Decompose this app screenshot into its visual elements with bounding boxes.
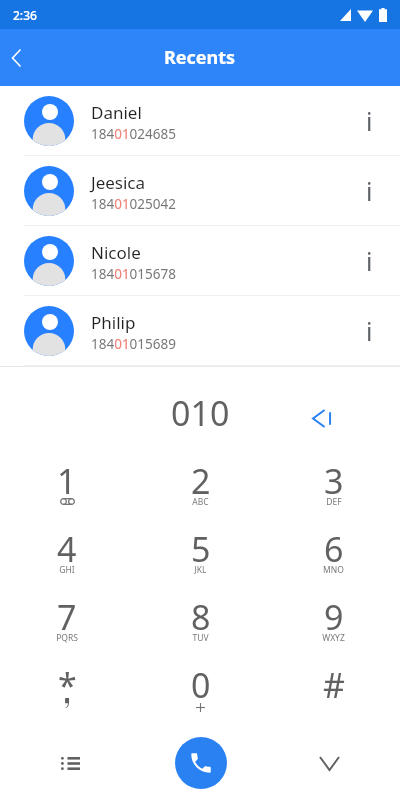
staticText: 18401015689	[91, 335, 176, 353]
staticText: *	[58, 662, 77, 708]
staticText: Daniel	[91, 101, 142, 124]
staticText: Philip	[91, 311, 136, 334]
staticText: 2	[191, 458, 211, 504]
button[interactable]: 0	[134, 647, 267, 715]
button[interactable]: Contacts list	[0, 722, 134, 800]
staticText: 4	[57, 526, 77, 572]
button[interactable]: 7	[0, 579, 134, 647]
staticText: 6	[324, 526, 344, 572]
button[interactable]: Call	[175, 737, 227, 789]
button[interactable]: Back	[0, 29, 33, 86]
staticText: 2:36	[13, 7, 37, 23]
staticText: 9	[324, 594, 344, 640]
button[interactable]: #	[267, 647, 400, 715]
staticText: 18401025042	[91, 195, 176, 213]
button[interactable]: Call details	[338, 239, 382, 283]
button[interactable]: 2	[134, 443, 267, 511]
staticText: 1	[57, 458, 77, 504]
staticText: 18401015678	[91, 265, 176, 283]
staticText: 010	[171, 390, 230, 436]
button[interactable]: 9	[267, 579, 400, 647]
staticText: GHI	[59, 564, 75, 576]
button[interactable]: Jeesica	[0, 156, 400, 225]
button[interactable]: *	[0, 647, 134, 715]
button[interactable]: Philip	[0, 296, 400, 365]
staticText: i	[366, 244, 373, 278]
button[interactable]: 4	[0, 511, 134, 579]
staticText: 18401024685	[91, 125, 176, 143]
staticText: 0	[191, 662, 211, 708]
staticText: TUV	[192, 632, 209, 644]
staticText: PQRS	[56, 632, 78, 644]
button[interactable]: Nicole	[0, 226, 400, 295]
staticText: i	[366, 314, 373, 348]
button[interactable]: 5	[134, 511, 267, 579]
staticText: Recents	[164, 45, 236, 70]
staticText: 8	[191, 594, 211, 640]
button[interactable]: Call details	[338, 99, 382, 143]
button[interactable]: Call details	[338, 169, 382, 213]
button[interactable]: 3	[267, 443, 400, 511]
staticText: ABC	[192, 496, 209, 508]
staticText: 5	[191, 526, 211, 572]
staticText: 3	[324, 458, 344, 504]
button[interactable]: 8	[134, 579, 267, 647]
staticText: i	[366, 174, 373, 208]
staticText: 7	[57, 594, 77, 640]
button[interactable]: 6	[267, 511, 400, 579]
staticText: JKL	[194, 564, 207, 576]
staticText: MNO	[323, 564, 344, 576]
staticText: Nicole	[91, 241, 141, 264]
button[interactable]: Backspace	[302, 398, 342, 438]
staticText: i	[366, 104, 373, 138]
button[interactable]: Daniel	[0, 86, 400, 155]
staticText: DEF	[326, 496, 342, 508]
staticText: WXYZ	[322, 632, 345, 644]
button[interactable]: Hide dialpad	[267, 722, 400, 800]
staticText: Jeesica	[91, 171, 146, 194]
staticText: #	[323, 662, 345, 708]
button[interactable]: 1	[0, 443, 134, 511]
button[interactable]: Call details	[338, 309, 382, 353]
